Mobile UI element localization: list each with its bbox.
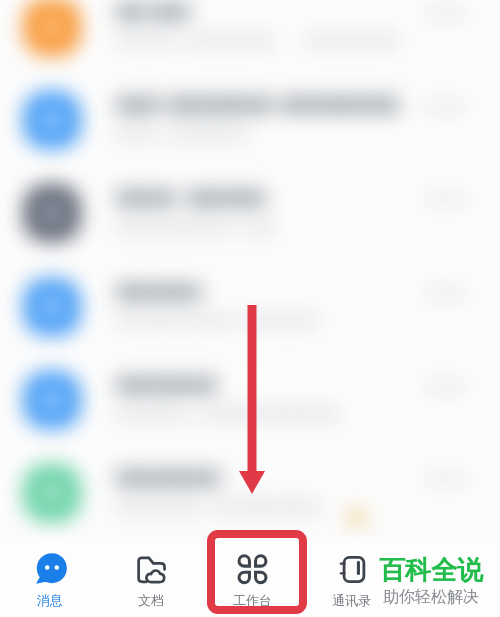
button[interactable]: 工作台 xyxy=(202,534,302,617)
button[interactable]: 通讯录 xyxy=(301,534,401,617)
staticText: 通讯录 xyxy=(332,592,371,608)
staticText: 助你轻松解决 xyxy=(383,587,479,607)
staticText: 消息 xyxy=(37,592,63,608)
staticText: 百科全说 xyxy=(379,554,483,587)
button[interactable]: 文档 xyxy=(101,534,201,617)
staticText: 工作台 xyxy=(233,592,272,608)
staticText: 文档 xyxy=(138,592,164,608)
button[interactable]: 消息 xyxy=(0,534,100,617)
